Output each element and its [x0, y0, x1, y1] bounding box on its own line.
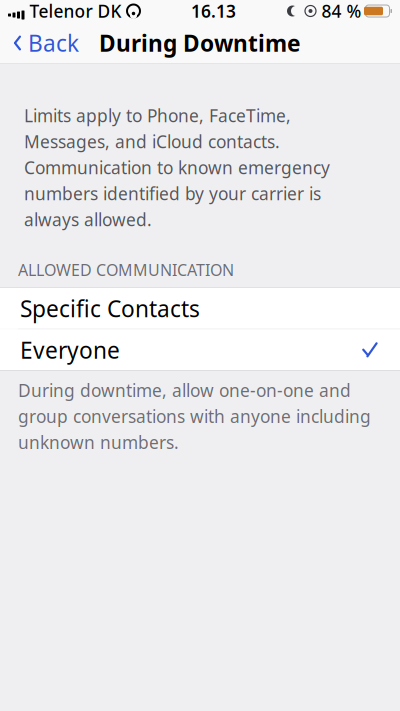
staticText: Everyone	[20, 335, 120, 365]
staticText: During Downtime	[99, 28, 301, 58]
staticText: Specific Contacts	[20, 293, 200, 323]
staticText: 16.13	[191, 0, 236, 22]
staticText: During downtime, allow one-on-one and gr…	[18, 379, 371, 454]
button[interactable]: Back	[0, 22, 91, 64]
staticText: Back	[28, 28, 79, 58]
staticText: 84 %	[321, 0, 361, 22]
staticText: Telenor DK	[29, 0, 121, 22]
button[interactable]: Everyone	[0, 329, 400, 370]
button[interactable]: Specific Contacts	[0, 288, 400, 329]
staticText: Limits apply to Phone, FaceTime, Message…	[24, 104, 330, 231]
staticText: ALLOWED COMMUNICATION	[18, 259, 234, 280]
